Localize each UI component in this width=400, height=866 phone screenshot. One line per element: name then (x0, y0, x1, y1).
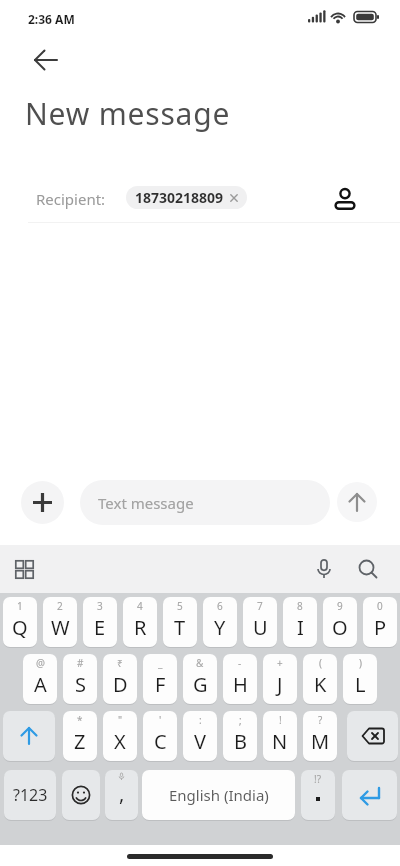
staticText: 2 (57, 599, 63, 613)
staticText: * (77, 713, 83, 727)
staticText: C (154, 728, 167, 755)
staticText: 2:36 AM (28, 11, 75, 27)
button[interactable] (3, 711, 55, 761)
staticText: T (174, 614, 186, 641)
button[interactable]: ₹ (103, 654, 137, 704)
button[interactable]: ) (343, 654, 377, 704)
button[interactable] (337, 482, 377, 522)
button[interactable]: # (63, 654, 97, 704)
button[interactable]: + (263, 654, 297, 704)
button[interactable]: ; (223, 711, 257, 761)
button[interactable]: ' (143, 711, 177, 761)
staticText: L (355, 671, 366, 698)
button[interactable] (342, 770, 397, 820)
staticText: ' (159, 713, 162, 727)
button[interactable]: English (India) (142, 770, 295, 820)
staticText: K (314, 671, 327, 698)
button[interactable]: ?123 (4, 770, 56, 820)
staticText: N (272, 728, 288, 755)
button[interactable]: " (103, 711, 137, 761)
button[interactable] (308, 553, 340, 585)
staticText: I (297, 614, 304, 641)
button[interactable]: : (183, 711, 217, 761)
staticText: E (94, 614, 106, 641)
staticText: _ (158, 656, 163, 670)
button[interactable]: _ (143, 654, 177, 704)
button[interactable]: 7 (243, 597, 277, 647)
staticText: S (75, 671, 86, 698)
button[interactable] (62, 770, 100, 820)
button[interactable]: 3 (83, 597, 117, 647)
staticText: 8 (297, 599, 303, 613)
staticText: H (233, 671, 248, 698)
staticText: # (77, 656, 84, 670)
button[interactable]: 5 (163, 597, 197, 647)
staticText: P (374, 614, 387, 641)
staticText: Text message (98, 493, 194, 513)
staticText: G (193, 671, 208, 698)
button[interactable]: @ (23, 654, 57, 704)
button[interactable]: 1 (3, 597, 37, 647)
button[interactable] (347, 711, 398, 761)
button[interactable]: ( (303, 654, 337, 704)
button[interactable]: 18730218809 (126, 186, 247, 209)
staticText: O (332, 614, 348, 641)
button[interactable] (28, 42, 64, 78)
button[interactable]: 6 (203, 597, 237, 647)
staticText: ?123 (13, 784, 48, 806)
staticText: W (51, 614, 70, 641)
button[interactable]: & (183, 654, 217, 704)
staticText: 0 (377, 599, 383, 613)
button[interactable]: - (223, 654, 257, 704)
staticText: F (155, 671, 166, 698)
button[interactable]: , (105, 770, 138, 820)
staticText: 1 (17, 599, 23, 613)
staticText: 18730218809 (135, 188, 224, 207)
button[interactable]: ? (303, 711, 337, 761)
button[interactable]: Text message (80, 480, 330, 525)
staticText: 5 (177, 599, 183, 613)
staticText: 7 (257, 599, 263, 613)
staticText: , (119, 780, 125, 807)
staticText: 4 (137, 599, 143, 613)
staticText: Recipient: (36, 189, 106, 209)
staticText: : (199, 713, 202, 727)
button[interactable]: 4 (123, 597, 157, 647)
staticText: M (311, 728, 330, 755)
staticText: U (253, 614, 268, 641)
staticText: ! (279, 713, 282, 727)
staticText: D (113, 671, 128, 698)
button[interactable] (21, 481, 64, 524)
staticText: + (277, 656, 283, 670)
button[interactable]: 9 (323, 597, 357, 647)
staticText: A (34, 671, 47, 698)
staticText: J (277, 671, 283, 698)
staticText: ? (318, 713, 323, 727)
staticText: ( (319, 656, 322, 670)
staticText: !? (314, 772, 322, 786)
staticText: X (114, 728, 126, 755)
staticText: - (238, 656, 242, 670)
staticText: B (234, 728, 247, 755)
button[interactable]: 2 (43, 597, 77, 647)
button[interactable] (330, 184, 360, 214)
staticText: Z (74, 728, 86, 755)
button[interactable] (352, 553, 384, 585)
staticText: ) (359, 656, 362, 670)
staticText: ₹ (117, 656, 123, 670)
button[interactable]: !? (301, 770, 335, 820)
button[interactable] (8, 553, 40, 585)
staticText: 3 (97, 599, 103, 613)
staticText: " (118, 713, 123, 727)
staticText: 6 (217, 599, 223, 613)
staticText: R (134, 614, 147, 641)
button[interactable]: ! (263, 711, 297, 761)
button[interactable]: 8 (283, 597, 317, 647)
button[interactable]: 0 (363, 597, 397, 647)
staticText: English (India) (169, 785, 269, 805)
staticText: @ (36, 656, 45, 670)
staticText: New message (25, 93, 231, 134)
staticText: V (194, 728, 206, 755)
button[interactable]: * (63, 711, 97, 761)
staticText: Q (12, 614, 28, 641)
